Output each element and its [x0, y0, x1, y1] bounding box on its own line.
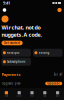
staticText: Upgrade plan [2, 82, 21, 85]
staticText: Receipts [7, 51, 19, 54]
staticText: nuggets. A code. [1, 31, 41, 38]
button[interactable]: Cards [13, 91, 26, 97]
button[interactable]: Get started [1, 41, 23, 45]
button[interactable]: Receipts [1, 49, 31, 57]
button[interactable]: Calls [38, 91, 51, 97]
staticText: Cards [17, 95, 22, 97]
button[interactable]: Upgrade [45, 82, 62, 85]
staticText: More [56, 95, 60, 97]
staticText: Get started [4, 41, 20, 45]
staticText: Subscriptions [7, 60, 25, 63]
staticText: Payments [1, 72, 20, 77]
staticText: Calls [43, 95, 46, 97]
staticText: Wir chat, not do [1, 24, 40, 31]
staticText: Home [4, 95, 8, 97]
staticText: Upgrade [47, 82, 60, 85]
button[interactable]: Voicing [33, 49, 62, 57]
button[interactable]: Menu [1, 6, 8, 13]
button[interactable]: Home [0, 91, 13, 97]
button[interactable]: Pay [26, 91, 38, 97]
staticText: Pay [30, 95, 33, 97]
staticText: Voicing [39, 51, 50, 54]
button[interactable]: More [51, 91, 64, 97]
button[interactable]: Subscriptions [1, 58, 31, 66]
staticText: See all [53, 73, 62, 76]
button[interactable]: See all [53, 73, 62, 76]
staticText: 9:41 [3, 0, 10, 6]
button[interactable]: Profile [56, 6, 63, 13]
